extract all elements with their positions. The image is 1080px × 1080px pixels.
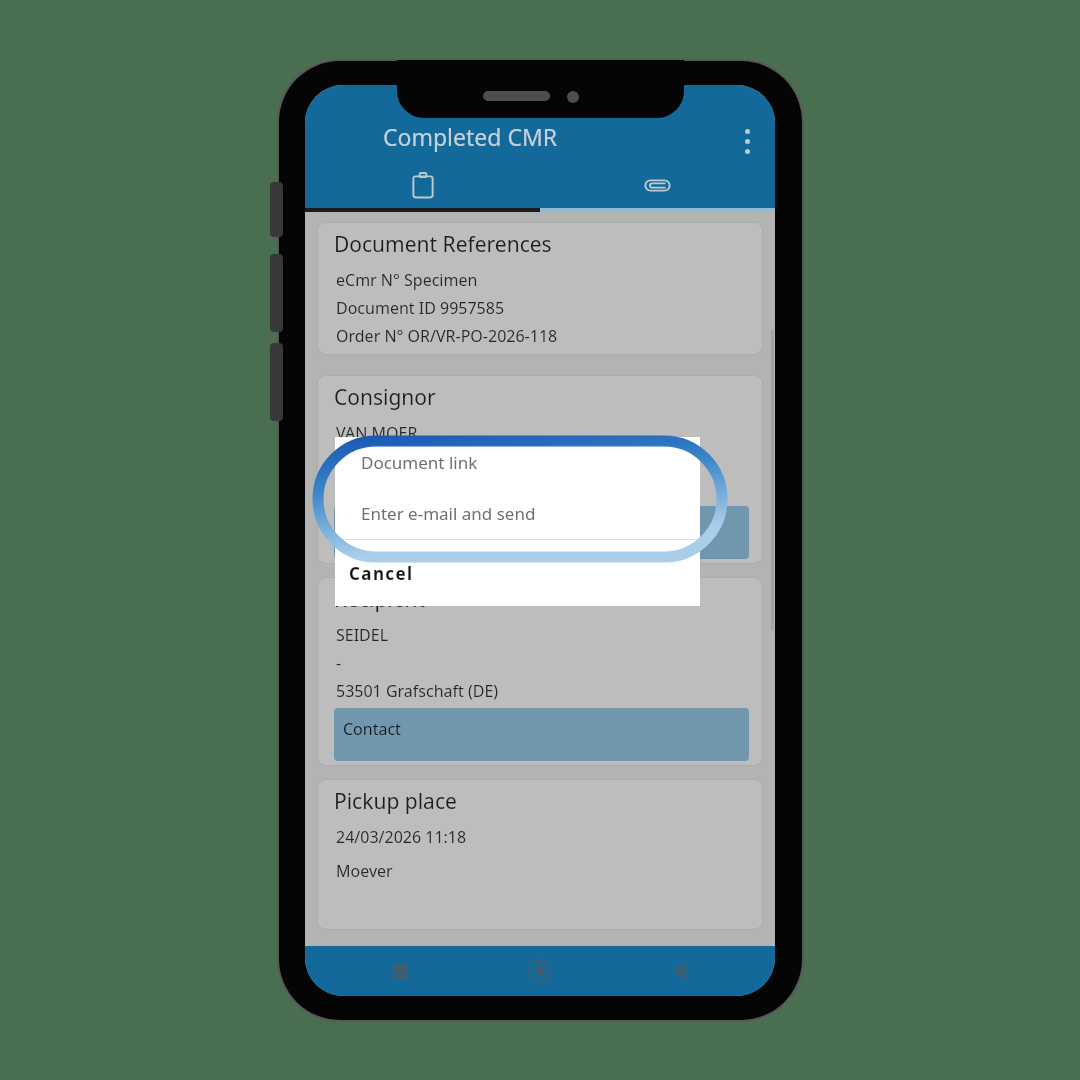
staticText: VAN MOER — [336, 422, 418, 444]
staticText: - — [336, 652, 342, 674]
staticText: Cancel — [349, 562, 414, 585]
staticText: eCmr N° Specimen — [336, 269, 478, 291]
staticText: Document References — [334, 230, 552, 259]
button[interactable]: Attachments tab — [540, 163, 775, 208]
staticText: 53501 Grafschaft (DE) — [336, 680, 499, 702]
staticText: Order N° OR/VR-PO-2026-118 — [336, 325, 558, 347]
button[interactable]: More options — [725, 119, 769, 163]
button[interactable]: Consignor — [317, 375, 763, 564]
button[interactable]: Document tab — [305, 163, 540, 208]
button[interactable]: Contact — [334, 506, 749, 559]
staticText: - — [336, 450, 342, 472]
button[interactable]: Enter e-mail and send — [335, 488, 700, 539]
staticText: Moever — [336, 860, 393, 882]
button[interactable]: Home — [521, 952, 559, 990]
staticText: Document link — [361, 451, 478, 474]
staticText: Recipient — [334, 585, 426, 614]
button[interactable]: Document References — [317, 222, 763, 355]
staticText: Enter e-mail and send — [361, 502, 536, 525]
staticText: Completed CMR — [383, 121, 558, 152]
button[interactable]: Back — [661, 952, 699, 990]
button[interactable]: Cancel — [335, 540, 700, 606]
staticText: 24/03/2026 11:18 — [336, 826, 467, 848]
staticText: Consignor — [334, 383, 436, 412]
button[interactable]: Contact — [334, 708, 749, 761]
button[interactable]: Recipient — [317, 577, 763, 766]
staticText: Contact — [343, 516, 401, 538]
staticText: SEIDEL — [336, 624, 389, 646]
staticText: Contact — [343, 718, 401, 740]
button[interactable]: Pickup place — [317, 779, 763, 930]
staticText: Pickup place — [334, 787, 457, 816]
button[interactable]: Recents — [381, 952, 419, 990]
button[interactable]: Document link — [335, 437, 700, 488]
staticText: Document ID 9957585 — [336, 297, 505, 319]
